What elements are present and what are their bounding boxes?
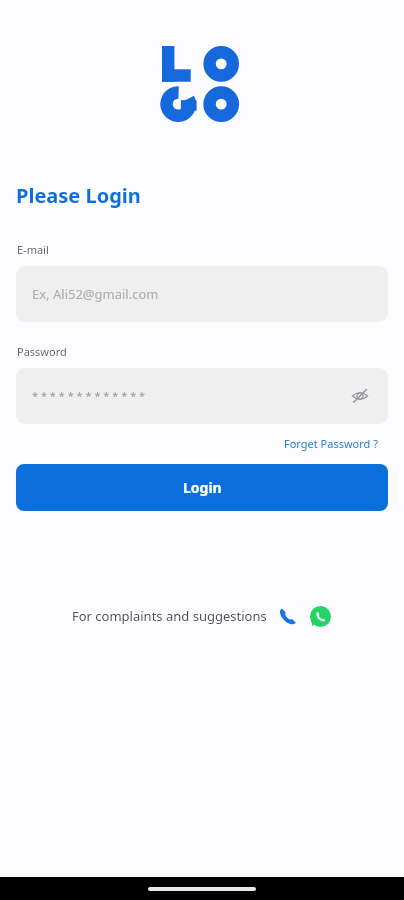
button[interactable]: Show password xyxy=(344,380,376,412)
staticText: Ex, Ali52@gmail.com xyxy=(32,285,159,303)
staticText: Please Login xyxy=(16,182,141,209)
button[interactable]: * * * * * * * * * * * * * xyxy=(16,368,388,424)
staticText: Login xyxy=(183,478,222,497)
button[interactable]: Ex, Ali52@gmail.com xyxy=(16,266,388,322)
button[interactable]: Call us xyxy=(277,605,299,627)
button[interactable]: WhatsApp xyxy=(308,604,332,628)
button[interactable]: Forget Password ? xyxy=(284,436,378,451)
button[interactable]: Login xyxy=(16,464,388,511)
staticText: Password xyxy=(17,344,67,359)
staticText: E-mail xyxy=(17,242,49,257)
staticText: For complaints and suggestions xyxy=(72,607,267,625)
staticText: * * * * * * * * * * * * * xyxy=(32,388,146,403)
staticText: Forget Password ? xyxy=(284,436,378,451)
